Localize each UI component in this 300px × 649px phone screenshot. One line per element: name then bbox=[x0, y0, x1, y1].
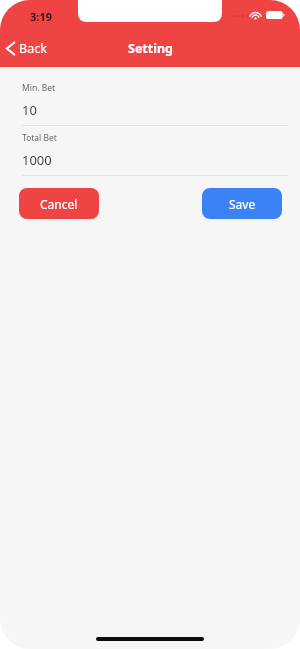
other: Back bbox=[6, 41, 15, 56]
staticText: Save bbox=[229, 196, 256, 212]
staticText: Total Bet bbox=[22, 132, 57, 144]
staticText: Setting bbox=[128, 40, 173, 57]
staticText: Min. Bet bbox=[22, 82, 56, 94]
button[interactable]: Back bbox=[0, 36, 57, 61]
staticText: 3:19 bbox=[30, 9, 52, 24]
button[interactable]: Cancel bbox=[19, 188, 99, 219]
staticText: 10 bbox=[22, 101, 37, 119]
button[interactable]: Min. Bet bbox=[0, 82, 300, 119]
staticText: Back bbox=[19, 40, 47, 57]
staticText: 1000 bbox=[22, 151, 52, 169]
button[interactable]: Total Bet bbox=[0, 132, 300, 169]
staticText: Cancel bbox=[40, 196, 78, 212]
button[interactable]: Save bbox=[202, 188, 282, 219]
